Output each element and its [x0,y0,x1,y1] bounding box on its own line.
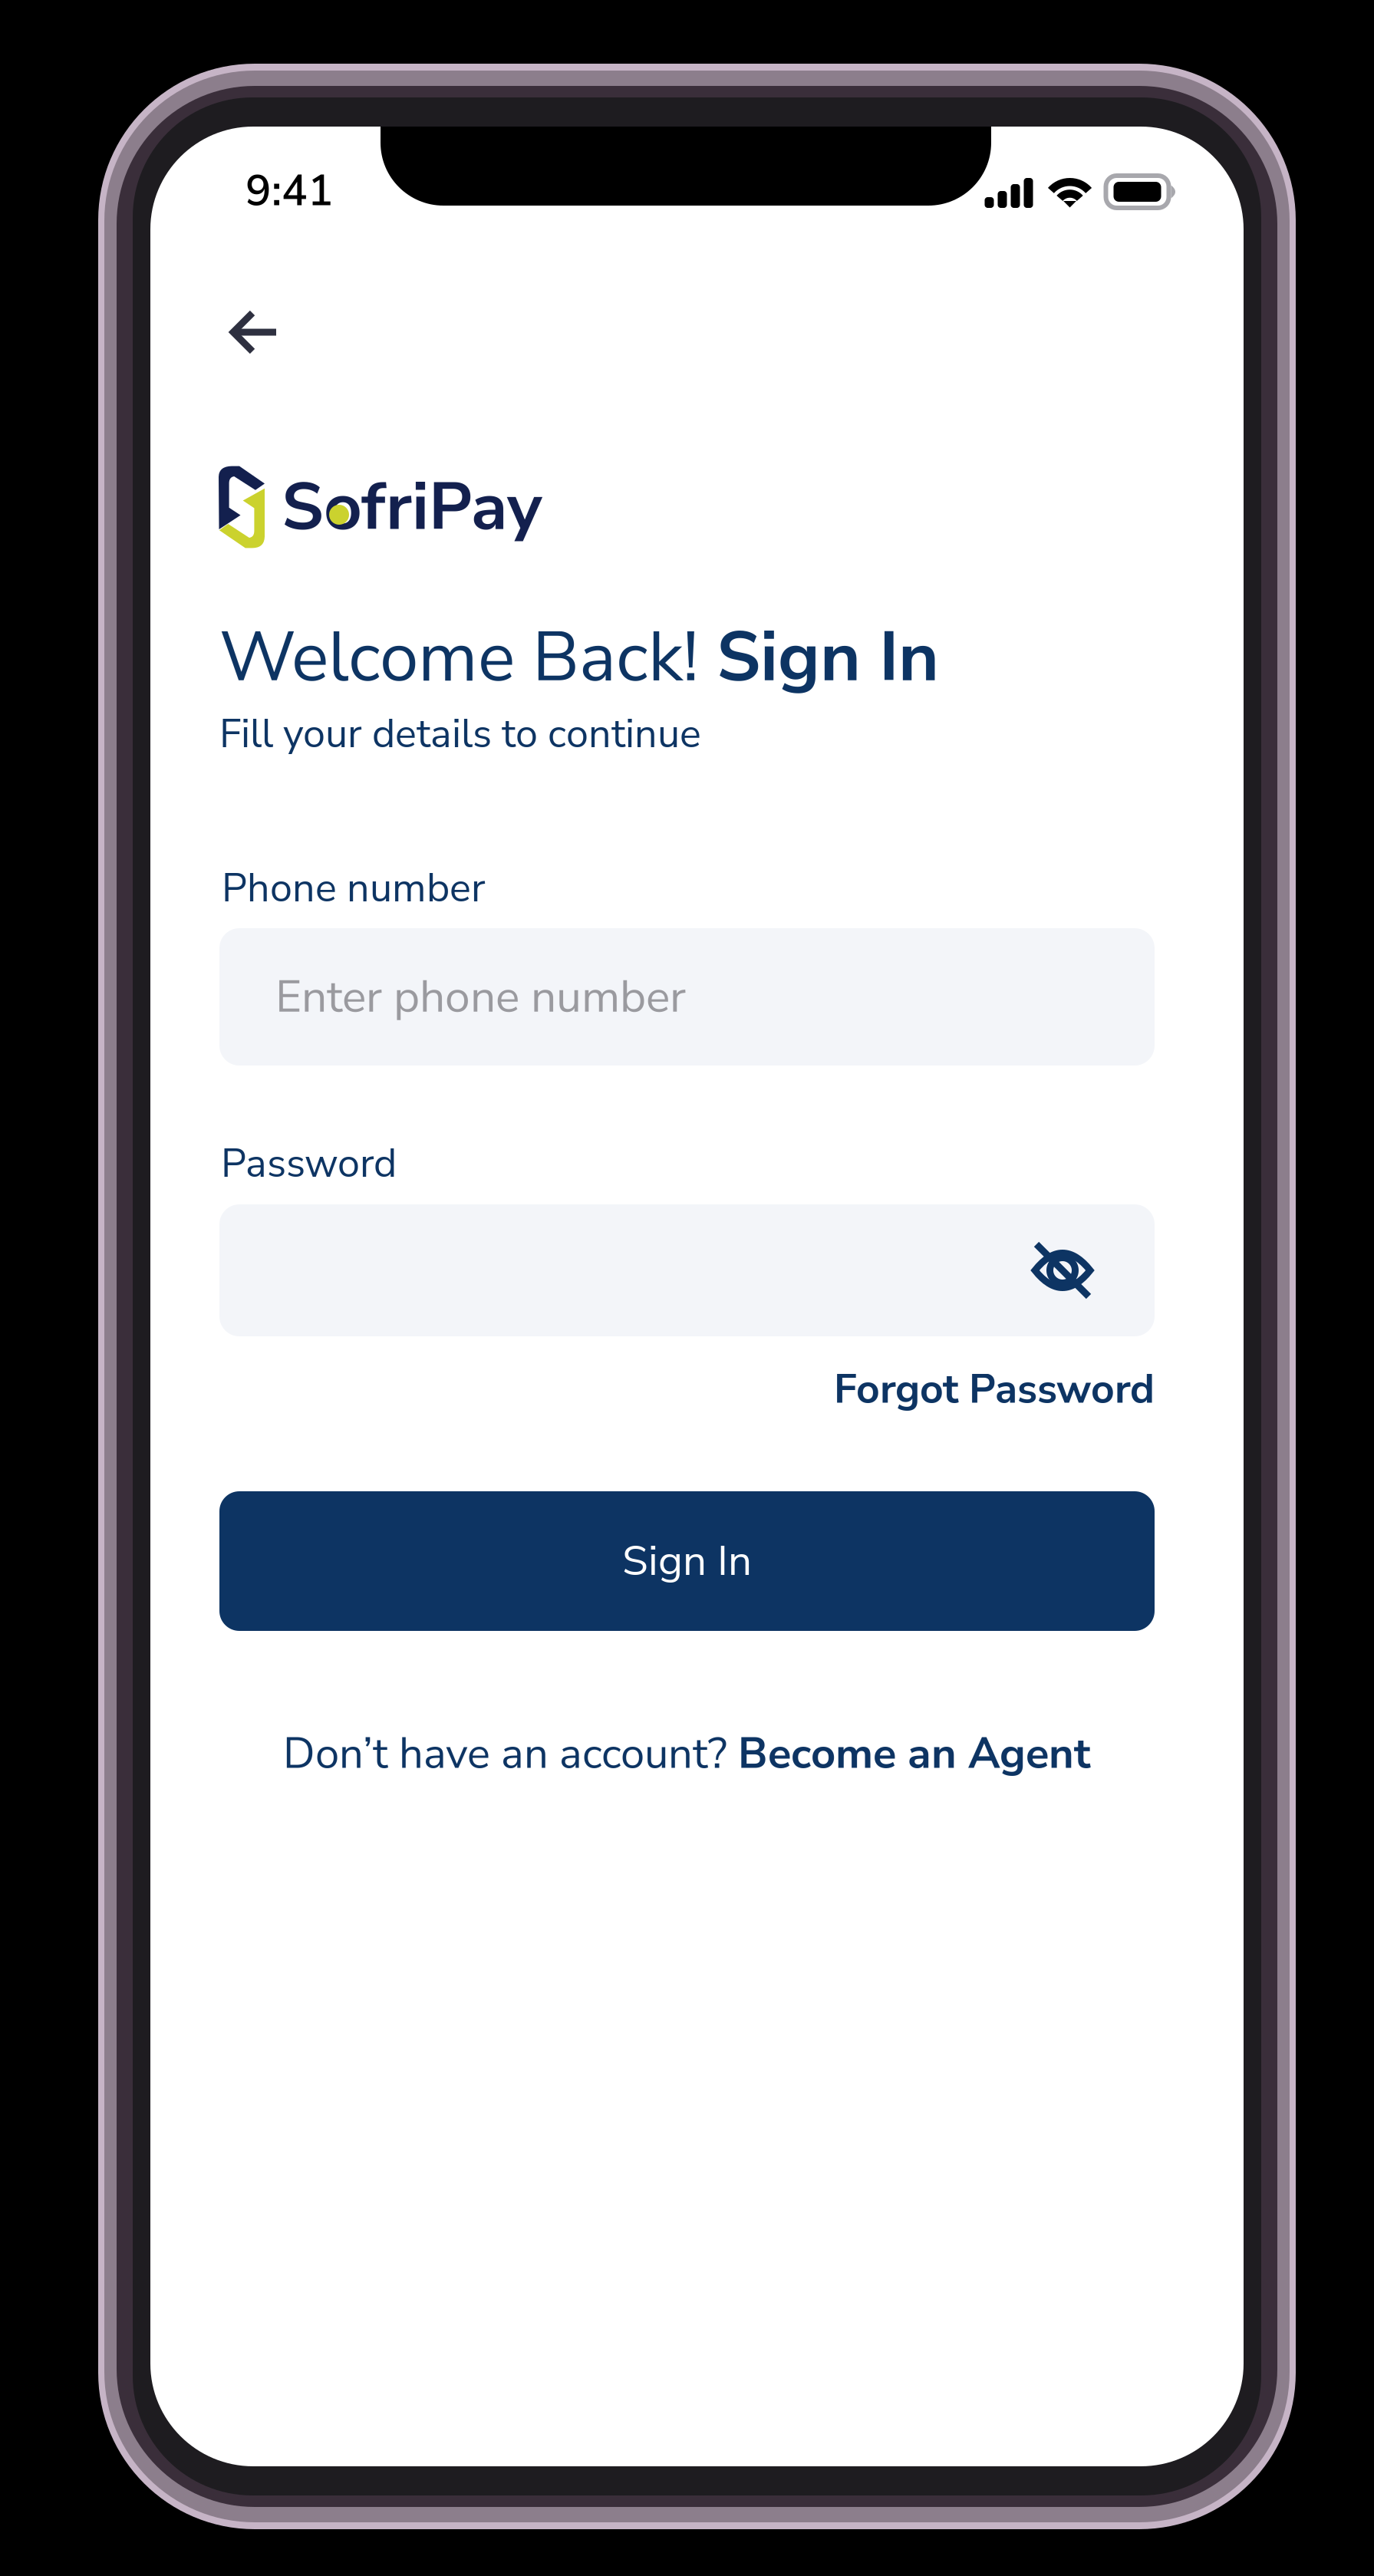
staticText: Forgot Password [834,1361,1155,1417]
staticText: 9:41 [245,162,334,220]
staticText: Don’t have an account? Become an Agent [283,1725,1091,1782]
staticText: SofriPay [282,462,542,552]
staticText: Sign In [622,1532,752,1590]
staticText: Enter phone number [275,966,686,1028]
button[interactable]: Don’t have an account? Become an Agent [219,1725,1155,1782]
staticText: Fill your details to continue [219,707,701,761]
button[interactable]: Forgot Password [733,1361,1155,1417]
staticText: Welcome Back! Sign In [219,611,939,704]
staticText: Password [221,1136,397,1191]
button[interactable]: Back [230,310,278,354]
staticText: Phone number [222,861,486,915]
button[interactable]: Show password [1033,1241,1092,1300]
button[interactable]: Sign In [219,1491,1155,1631]
